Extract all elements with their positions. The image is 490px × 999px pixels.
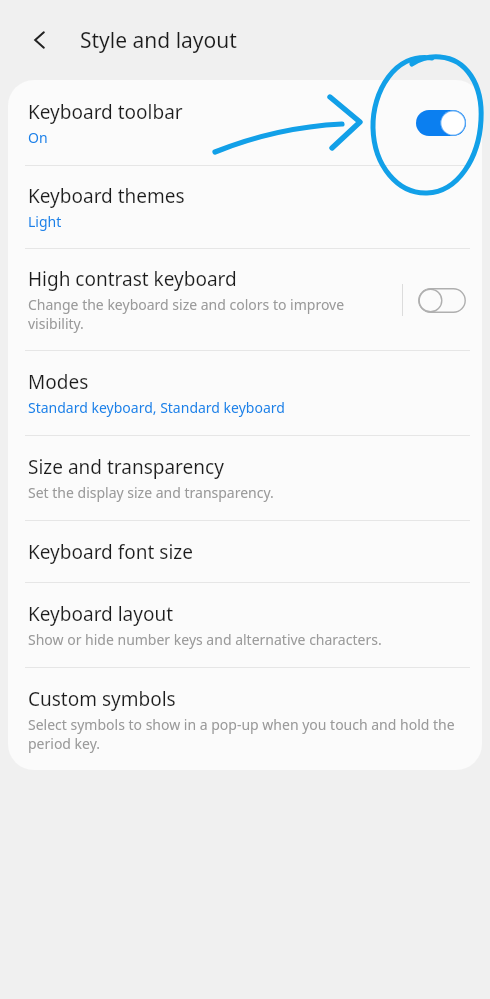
staticText: High contrast keyboard [28,266,237,292]
staticText: Set the display size and transparency. [28,483,274,502]
button[interactable]: Keyboard toolbar toggle, on [414,106,468,140]
staticText: Modes [28,369,89,395]
staticText: Show or hide number keys and alternative… [28,630,382,649]
button[interactable]: Keyboard font size [8,521,482,582]
staticText: Change the keyboard size and colors to i… [28,295,392,333]
staticText: Style and layout [80,26,237,55]
button[interactable]: High contrast keyboard toggle, off [416,283,468,317]
button[interactable]: Custom symbols [8,668,482,770]
staticText: Keyboard font size [28,539,193,565]
staticText: Size and transparency [28,454,224,480]
button[interactable]: Modes [8,351,482,435]
button[interactable]: Keyboard layout [8,583,482,667]
button[interactable]: Keyboard toolbar [8,80,482,165]
button[interactable]: High contrast keyboard [8,249,482,350]
staticText: Light [28,212,62,231]
staticText: Select symbols to show in a pop-up when … [28,715,458,753]
staticText: Keyboard toolbar [28,99,183,125]
button[interactable]: Back [18,18,62,62]
staticText: Keyboard themes [28,183,185,209]
staticText: On [28,128,48,147]
button[interactable]: Size and transparency [8,436,482,520]
button[interactable]: Keyboard themes [8,166,482,248]
staticText: Custom symbols [28,686,176,712]
staticText: Standard keyboard, Standard keyboard [28,398,285,417]
staticText: Keyboard layout [28,601,174,627]
